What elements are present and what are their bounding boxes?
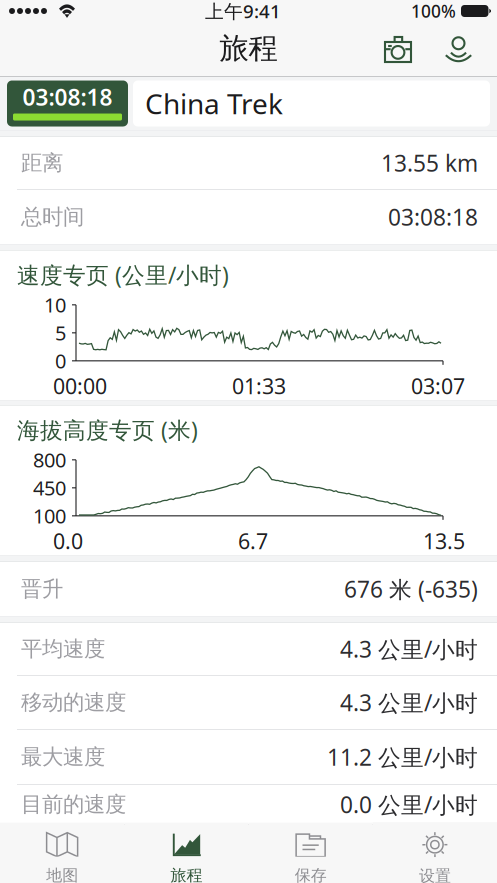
staticText: 地图 <box>46 866 78 883</box>
staticText: 4.3 公里/小时 <box>340 687 478 717</box>
staticText: 平均速度 <box>21 636 105 662</box>
staticText: 距离 <box>21 150 63 176</box>
staticText: 上午9:41 <box>205 0 281 23</box>
staticText: 旅程 <box>170 866 202 883</box>
staticText: 13.55 km <box>381 148 478 178</box>
button[interactable]: 设置 <box>373 825 497 883</box>
button[interactable]: Live broadcast <box>435 23 497 75</box>
staticText: 旅程 <box>219 30 277 66</box>
staticText: 03:07 <box>411 372 465 400</box>
staticText: 800 <box>33 447 66 473</box>
staticText: 676 米 (-635) <box>344 574 478 604</box>
button[interactable]: Camera <box>369 24 435 75</box>
button[interactable]: 目前的速度 <box>0 785 497 824</box>
staticText: 01:33 <box>232 372 286 400</box>
staticText: 100 <box>33 503 66 529</box>
staticText: 移动的速度 <box>21 689 126 716</box>
staticText: 00:00 <box>53 372 107 400</box>
staticText: 总时间 <box>21 204 84 230</box>
button[interactable]: 晋升 <box>0 562 497 616</box>
button[interactable]: China Trek <box>133 80 490 126</box>
staticText: 0 <box>55 348 66 374</box>
staticText: 100% <box>411 0 456 22</box>
staticText: 晋升 <box>21 576 63 602</box>
button[interactable]: 地图 <box>0 825 124 883</box>
button[interactable]: 03:08:18 <box>7 80 128 126</box>
staticText: 03:08:18 <box>22 82 112 112</box>
button[interactable]: 总时间 <box>0 190 497 244</box>
staticText: 速度专页 (公里/小时) <box>17 260 229 290</box>
button[interactable]: 移动的速度 <box>0 676 497 729</box>
button[interactable]: 距离 <box>0 137 497 189</box>
button[interactable]: 最大速度 <box>0 730 497 784</box>
staticText: 0.0 公里/小时 <box>340 789 478 819</box>
staticText: 5 <box>55 320 66 346</box>
staticText: 目前的速度 <box>21 791 126 818</box>
staticText: 4.3 公里/小时 <box>340 634 478 664</box>
staticText: 13.5 <box>423 527 465 555</box>
staticText: China Trek <box>145 85 283 122</box>
staticText: 11.2 公里/小时 <box>327 742 478 772</box>
staticText: 10 <box>44 292 66 318</box>
button[interactable]: 保存 <box>248 825 373 883</box>
staticText: 03:08:18 <box>388 202 478 232</box>
staticText: 450 <box>33 475 66 501</box>
staticText: 0.0 <box>53 527 83 555</box>
staticText: 设置 <box>419 866 451 883</box>
staticText: 6.7 <box>238 527 268 555</box>
staticText: 最大速度 <box>21 744 105 770</box>
staticText: 海拔高度专页 (米) <box>17 415 198 445</box>
button[interactable]: 旅程 <box>124 825 248 883</box>
button[interactable]: 平均速度 <box>0 623 497 675</box>
staticText: 保存 <box>295 866 327 883</box>
